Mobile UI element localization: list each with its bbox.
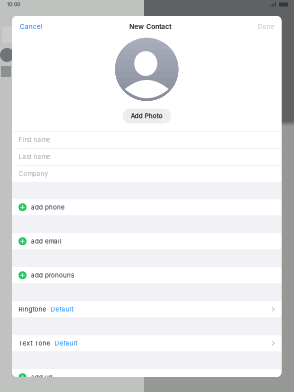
staticText: Cancel: [20, 22, 43, 30]
button[interactable]: add url: [12, 369, 281, 385]
staticText: add email: [31, 237, 62, 245]
staticText: Default: [50, 305, 73, 313]
staticText: Done: [257, 22, 274, 30]
button[interactable]: Ringtone: [12, 301, 281, 317]
staticText: add phone: [31, 203, 65, 211]
staticText: Company: [18, 170, 48, 178]
staticText: Text Tone: [18, 339, 50, 347]
staticText: New Contact: [129, 22, 171, 31]
staticText: add pronouns: [31, 271, 74, 279]
staticText: Default: [54, 339, 77, 347]
staticText: Last name: [18, 153, 50, 161]
button[interactable]: add phone: [12, 199, 281, 215]
staticText: Ringtone: [18, 305, 46, 313]
button[interactable]: Cancel: [20, 18, 49, 34]
button[interactable]: add pronouns: [12, 267, 281, 283]
button[interactable]: add email: [12, 233, 281, 249]
button[interactable]: Add Photo: [122, 109, 171, 123]
staticText: add url: [31, 373, 53, 381]
staticText: Add Photo: [131, 112, 163, 120]
staticText: First name: [18, 136, 50, 144]
button[interactable]: Done: [251, 18, 274, 34]
staticText: 10:00: [7, 1, 20, 7]
button[interactable]: Text Tone: [12, 335, 281, 351]
